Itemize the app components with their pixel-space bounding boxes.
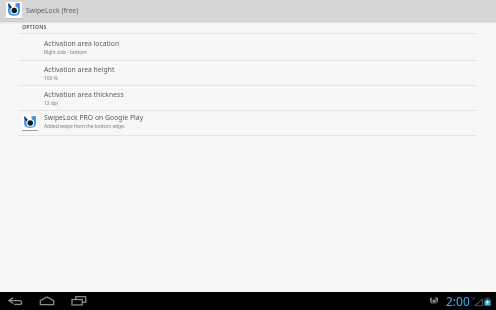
staticText: Added swipe from the bottom edge. [44,123,125,130]
staticText: Activation area height [44,65,115,74]
button[interactable]: Activation area thickness [0,86,496,110]
staticText: 12 dpi [44,100,58,107]
staticText: Right side - bottom [44,49,87,56]
button[interactable]: Back [8,295,24,307]
staticText: SwipeLock (free) [26,6,79,15]
staticText: 100 % [44,75,58,82]
staticText: OPTIONS [22,24,47,31]
button[interactable]: Activation area height [0,61,496,85]
button[interactable]: Recent apps [71,295,87,307]
button[interactable]: SwipeLock notification [429,296,439,306]
staticText: 2:00 [446,293,470,309]
button[interactable]: Activation area location [0,34,496,60]
staticText: SwipeLock PRO on Google Play [44,113,144,122]
button[interactable]: SwipeLock (free) [0,0,496,21]
button[interactable]: Home [39,295,55,307]
staticText: Activation area thickness [44,90,124,99]
staticText: Activation area location [44,39,120,48]
button[interactable]: SwipeLock PRO on Google Play [0,111,496,135]
